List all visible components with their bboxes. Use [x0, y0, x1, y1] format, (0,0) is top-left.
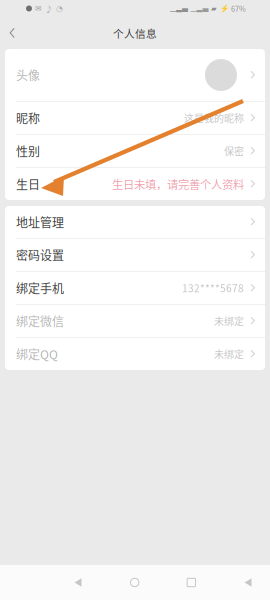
staticText: ▁▃▅ [170, 4, 188, 13]
staticText: 个人信息 [113, 25, 157, 41]
staticText: 未绑定 [214, 347, 244, 361]
staticText: 67% [231, 3, 246, 14]
staticText: ⚡ [219, 4, 228, 13]
staticText: 生日未填，请完善个人资料 [112, 176, 244, 192]
staticText: ✉ [35, 4, 42, 13]
button[interactable]: Menu [228, 565, 268, 599]
button[interactable]: Home [115, 565, 155, 599]
staticText: 昵称 [16, 109, 40, 127]
staticText: 保密 [224, 144, 244, 158]
staticText: 性别 [16, 142, 40, 160]
staticText: ▁▃▅ [190, 4, 208, 13]
button[interactable]: 密码设置 [5, 239, 265, 271]
button[interactable]: 生日 [5, 168, 265, 200]
staticText: 地址管理 [16, 213, 64, 231]
staticText: 这是我的昵称 [184, 111, 244, 125]
button[interactable]: Back [0, 18, 25, 48]
button[interactable]: 头像 [5, 49, 265, 101]
staticText: 绑定手机 [16, 279, 64, 297]
button[interactable]: 昵称 [5, 102, 265, 134]
button[interactable]: Back [58, 565, 98, 599]
staticText: 绑定微信 [16, 312, 64, 330]
button[interactable]: 性别 [5, 135, 265, 167]
staticText: 密码设置 [16, 246, 64, 264]
button[interactable]: Recent apps [171, 565, 211, 599]
staticText: 132****5678 [182, 281, 244, 295]
button[interactable]: 绑定微信 [5, 305, 265, 337]
staticText: 生日 [16, 175, 40, 193]
button[interactable]: 绑定手机 [5, 272, 265, 304]
staticText: 未绑定 [214, 314, 244, 328]
staticText: 绑定QQ [16, 345, 58, 363]
staticText: ▰ [211, 4, 217, 13]
staticText: ◔ [56, 4, 63, 13]
staticText: ♪ [45, 3, 53, 14]
button[interactable]: 绑定QQ [5, 338, 265, 370]
button[interactable]: 地址管理 [5, 206, 265, 238]
staticText: 头像 [16, 66, 40, 84]
